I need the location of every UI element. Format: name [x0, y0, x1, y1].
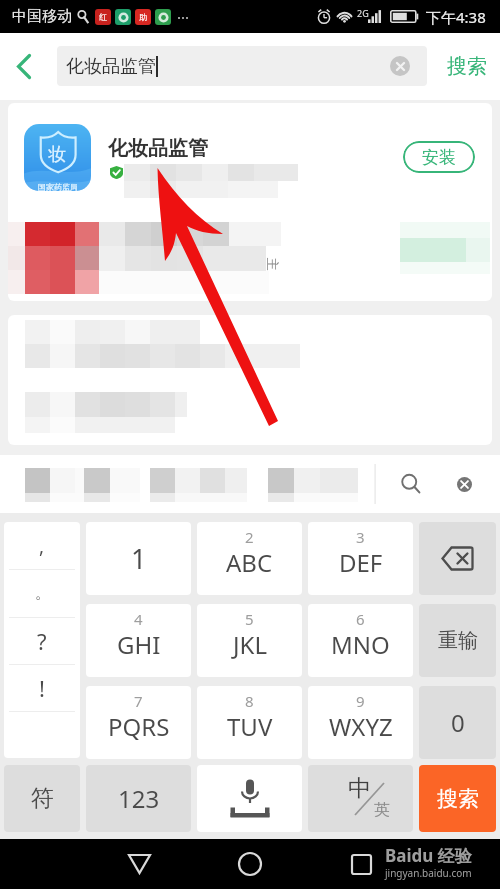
- button[interactable]: 。: [4, 570, 80, 617]
- staticText: 7: [134, 691, 143, 711]
- staticText: 化妆品监管: [66, 55, 156, 78]
- staticText: 国家药监局: [38, 182, 78, 191]
- button[interactable]: 搜索: [434, 33, 500, 100]
- staticText: 3: [356, 527, 365, 547]
- button[interactable]: Hide keyboard: [439, 459, 489, 509]
- staticText: 红: [99, 12, 107, 22]
- staticText: 中: [348, 774, 371, 803]
- button[interactable]: 8: [197, 686, 302, 759]
- staticText: 符: [31, 784, 54, 813]
- button[interactable]: 5: [197, 604, 302, 677]
- button[interactable]: 6: [308, 604, 413, 677]
- staticText: JKL: [233, 628, 267, 661]
- button[interactable]: !: [4, 665, 80, 711]
- staticText: 2: [245, 527, 254, 547]
- staticText: jingyan.baidu.com: [385, 866, 472, 880]
- staticText: 助: [139, 12, 147, 22]
- staticText: 下午4:38: [426, 7, 486, 27]
- staticText: 英: [374, 800, 390, 820]
- staticText: 0: [451, 706, 465, 739]
- button[interactable]: Space and voice input: [197, 765, 302, 832]
- button[interactable]: 1: [86, 522, 191, 595]
- button[interactable]: 中: [308, 765, 413, 832]
- button[interactable]: Recents: [333, 839, 389, 889]
- staticText: 8: [245, 691, 254, 711]
- staticText: ABC: [226, 546, 273, 579]
- staticText: 搜索: [437, 786, 479, 812]
- staticText: WXYZ: [329, 710, 393, 743]
- staticText: PQRS: [108, 710, 170, 743]
- button[interactable]: ,: [4, 522, 80, 569]
- staticText: 123: [118, 782, 160, 815]
- button[interactable]: Home: [222, 839, 278, 889]
- button[interactable]: 化妆品监管: [57, 46, 427, 86]
- staticText: 主: [264, 257, 280, 270]
- staticText: 2G: [357, 7, 369, 19]
- staticText: 安装: [422, 147, 456, 168]
- staticText: MNO: [331, 628, 390, 661]
- staticText: 4: [134, 609, 143, 629]
- button[interactable]: Clear: [390, 56, 410, 76]
- button[interactable]: 4: [86, 604, 191, 677]
- button[interactable]: 安装: [403, 141, 475, 173]
- button[interactable]: ?: [4, 618, 80, 664]
- button[interactable]: Backspace: [419, 522, 496, 595]
- button[interactable]: [8, 315, 492, 445]
- button[interactable]: 123: [86, 765, 191, 832]
- button[interactable]: 重输: [419, 604, 496, 677]
- staticText: TUV: [227, 710, 273, 743]
- button[interactable]: 0: [419, 686, 496, 759]
- button[interactable]: 妆: [8, 103, 492, 208]
- staticText: 6: [356, 609, 365, 629]
- staticText: 中国移动: [12, 7, 72, 26]
- staticText: GHI: [117, 628, 161, 661]
- button[interactable]: Back: [111, 839, 167, 889]
- staticText: ,: [39, 533, 45, 559]
- button[interactable]: 9: [308, 686, 413, 759]
- button[interactable]: 搜索: [419, 765, 496, 832]
- staticText: 重输: [438, 628, 478, 653]
- staticText: 搜索: [447, 54, 487, 79]
- button[interactable]: 7: [86, 686, 191, 759]
- button[interactable]: 3: [308, 522, 413, 595]
- staticText: 5: [245, 609, 254, 629]
- staticText: ···: [177, 7, 190, 27]
- staticText: 。: [35, 584, 50, 603]
- staticText: Baidu 经验: [385, 844, 472, 867]
- staticText: 1: [131, 540, 147, 577]
- staticText: DEF: [339, 546, 383, 579]
- staticText: 妆: [48, 143, 66, 166]
- staticText: 化妆品监管: [108, 136, 208, 161]
- staticText: !: [39, 673, 45, 703]
- button[interactable]: 符: [4, 765, 80, 832]
- staticText: 9: [356, 691, 365, 711]
- button[interactable]: 2: [197, 522, 302, 595]
- staticText: ?: [37, 626, 47, 656]
- button[interactable]: Search: [386, 459, 436, 509]
- button[interactable]: Back: [3, 46, 45, 86]
